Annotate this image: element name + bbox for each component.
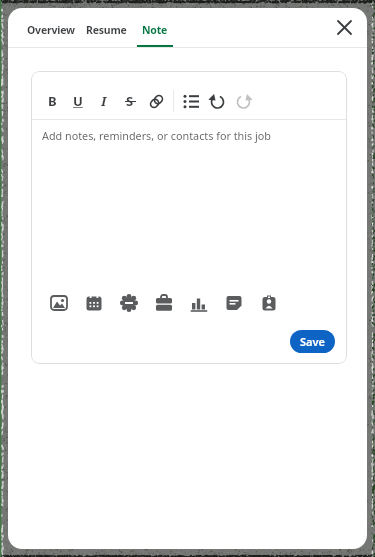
button[interactable] bbox=[120, 294, 138, 312]
staticText: U bbox=[73, 92, 83, 110]
staticText: Add notes, reminders, or contacts for th… bbox=[42, 128, 271, 143]
button[interactable]: U bbox=[65, 89, 91, 113]
staticText: I bbox=[101, 92, 107, 110]
button[interactable]: S bbox=[117, 89, 143, 113]
button[interactable] bbox=[178, 89, 204, 113]
button[interactable] bbox=[260, 294, 278, 312]
button[interactable] bbox=[155, 294, 173, 312]
button[interactable]: Note bbox=[137, 23, 173, 47]
button[interactable]: B bbox=[39, 89, 65, 113]
button[interactable] bbox=[225, 294, 243, 312]
staticText: S bbox=[126, 92, 134, 110]
staticText: Resume bbox=[86, 23, 127, 37]
staticText: B bbox=[48, 92, 57, 110]
button[interactable] bbox=[85, 294, 103, 312]
button[interactable]: Overview bbox=[22, 23, 80, 47]
button[interactable] bbox=[336, 19, 352, 35]
staticText: Save bbox=[300, 334, 325, 349]
button[interactable] bbox=[204, 89, 230, 113]
staticText: Overview bbox=[27, 23, 75, 37]
button[interactable] bbox=[190, 294, 208, 312]
button[interactable] bbox=[50, 294, 68, 312]
staticText: Note bbox=[142, 23, 168, 37]
button[interactable] bbox=[230, 89, 256, 113]
button[interactable] bbox=[143, 89, 169, 113]
button[interactable]: Resume bbox=[81, 23, 132, 47]
button[interactable]: I bbox=[91, 89, 117, 113]
button[interactable]: Save bbox=[290, 330, 335, 353]
